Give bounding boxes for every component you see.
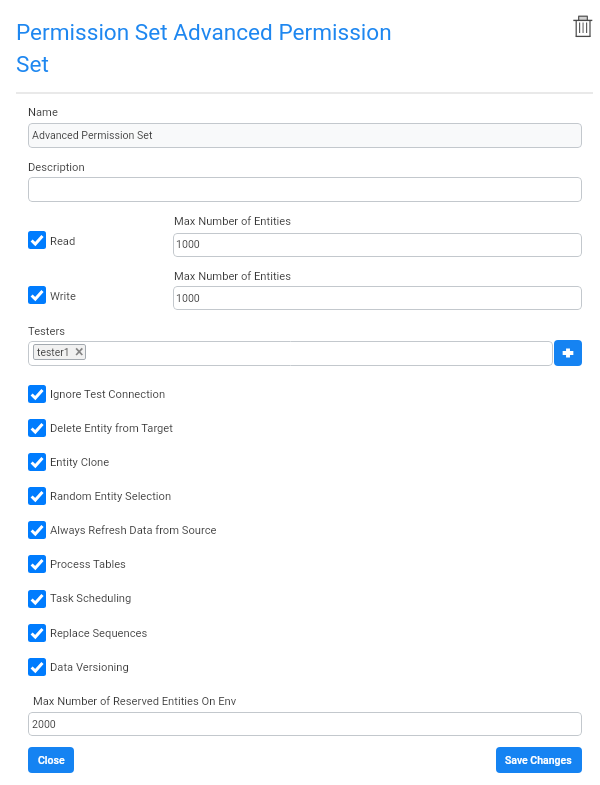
button[interactable] (28, 383, 166, 405)
button[interactable] (28, 656, 151, 678)
button[interactable] (28, 417, 177, 439)
staticText: Read (50, 235, 76, 248)
button[interactable]: Name (28, 123, 582, 148)
staticText: Random Entity Selection (50, 490, 172, 503)
button[interactable] (496, 747, 582, 773)
button[interactable] (28, 485, 172, 507)
button[interactable] (28, 519, 216, 541)
button[interactable]: Max Number of Reserved Entities On Env (28, 712, 582, 736)
button[interactable] (33, 344, 86, 360)
button[interactable]: Delete (571, 14, 595, 40)
staticText: Data Versioning (50, 661, 129, 674)
staticText: Advanced Permission Set (32, 129, 153, 141)
button[interactable]: Description (28, 177, 582, 202)
staticText: Save Changes (505, 754, 572, 766)
staticText: Entity Clone (50, 456, 110, 469)
staticText: Replace Sequences (50, 627, 148, 640)
staticText: Delete Entity from Target (50, 422, 173, 435)
staticText: Process Tables (50, 558, 126, 571)
staticText: Set (16, 51, 49, 77)
staticText: 1000 (176, 238, 200, 250)
button[interactable]: Max Number of Entities (173, 233, 582, 257)
button[interactable]: Testers (28, 341, 553, 366)
staticText: Close (38, 754, 65, 766)
staticText: Name (28, 106, 58, 119)
staticText: Write (50, 290, 76, 303)
staticText: Description (28, 161, 85, 174)
button[interactable]: Max Number of Entities (173, 286, 582, 310)
staticText: Ignore Test Connection (50, 388, 166, 401)
staticText: Permission Set Advanced Permission (16, 19, 392, 45)
button[interactable] (28, 588, 150, 610)
button[interactable] (28, 553, 146, 575)
staticText: 1000 (176, 292, 200, 304)
button[interactable] (28, 451, 136, 473)
button[interactable]: Add tester (554, 340, 582, 366)
staticText: Testers (28, 325, 65, 338)
staticText: Max Number of Entities (174, 215, 291, 228)
button[interactable]: Remove tester1 (75, 346, 85, 357)
button[interactable] (28, 747, 74, 773)
staticText: 2000 (32, 718, 56, 730)
staticText: Max Number of Reserved Entities On Env (33, 695, 237, 708)
button[interactable] (28, 284, 78, 306)
button[interactable] (28, 229, 78, 251)
staticText: tester1 (37, 346, 70, 358)
staticText: Task Scheduling (50, 592, 132, 605)
staticText: Always Refresh Data from Source (50, 524, 217, 537)
button[interactable] (28, 622, 166, 644)
staticText: Max Number of Entities (174, 270, 291, 283)
